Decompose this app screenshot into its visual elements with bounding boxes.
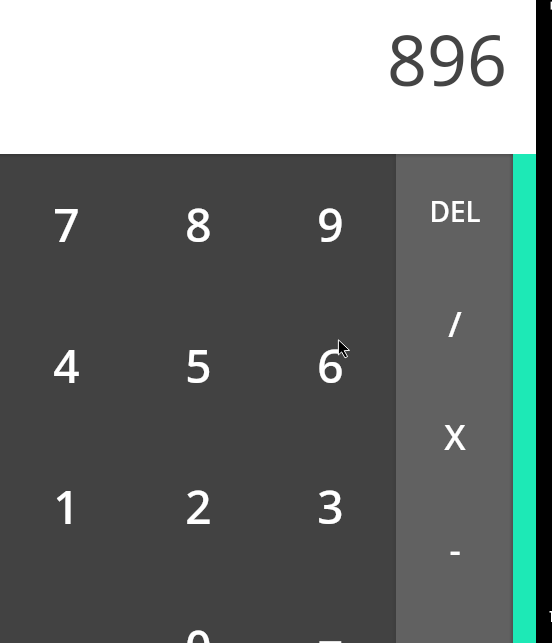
staticText: 4 <box>53 334 80 397</box>
button[interactable]: 8 <box>132 154 264 295</box>
button[interactable]: 5 <box>132 295 264 436</box>
button[interactable]: 4 <box>0 295 132 436</box>
staticText: DEL <box>429 192 481 230</box>
staticText: 3 <box>317 475 344 538</box>
staticText: X <box>444 413 466 461</box>
staticText: 8 <box>185 193 212 256</box>
button[interactable]: Multiply <box>396 380 513 493</box>
staticText: 7 <box>53 193 80 256</box>
button[interactable]: Delete <box>396 154 513 267</box>
button[interactable]: 1 <box>0 436 132 577</box>
button[interactable]: 9 <box>264 154 396 295</box>
staticText: = <box>317 615 344 643</box>
staticText: 896 <box>387 11 508 106</box>
button[interactable]: 0 <box>132 577 264 643</box>
staticText: 0 <box>185 615 212 643</box>
staticText: / <box>448 300 462 348</box>
staticText: 6 <box>317 334 344 397</box>
button[interactable]: 7 <box>0 154 132 295</box>
button[interactable]: = <box>264 577 396 643</box>
button[interactable]: Divide <box>396 267 513 380</box>
button[interactable]: Minus <box>396 493 513 606</box>
staticText: 5 <box>185 334 212 397</box>
staticText: 9 <box>317 193 344 256</box>
button[interactable]: 3 <box>264 436 396 577</box>
button[interactable]: 6 <box>264 295 396 436</box>
staticText: 2 <box>185 475 212 538</box>
staticText: 1 <box>53 475 80 538</box>
button[interactable]: 2 <box>132 436 264 577</box>
staticText: - <box>449 526 461 574</box>
